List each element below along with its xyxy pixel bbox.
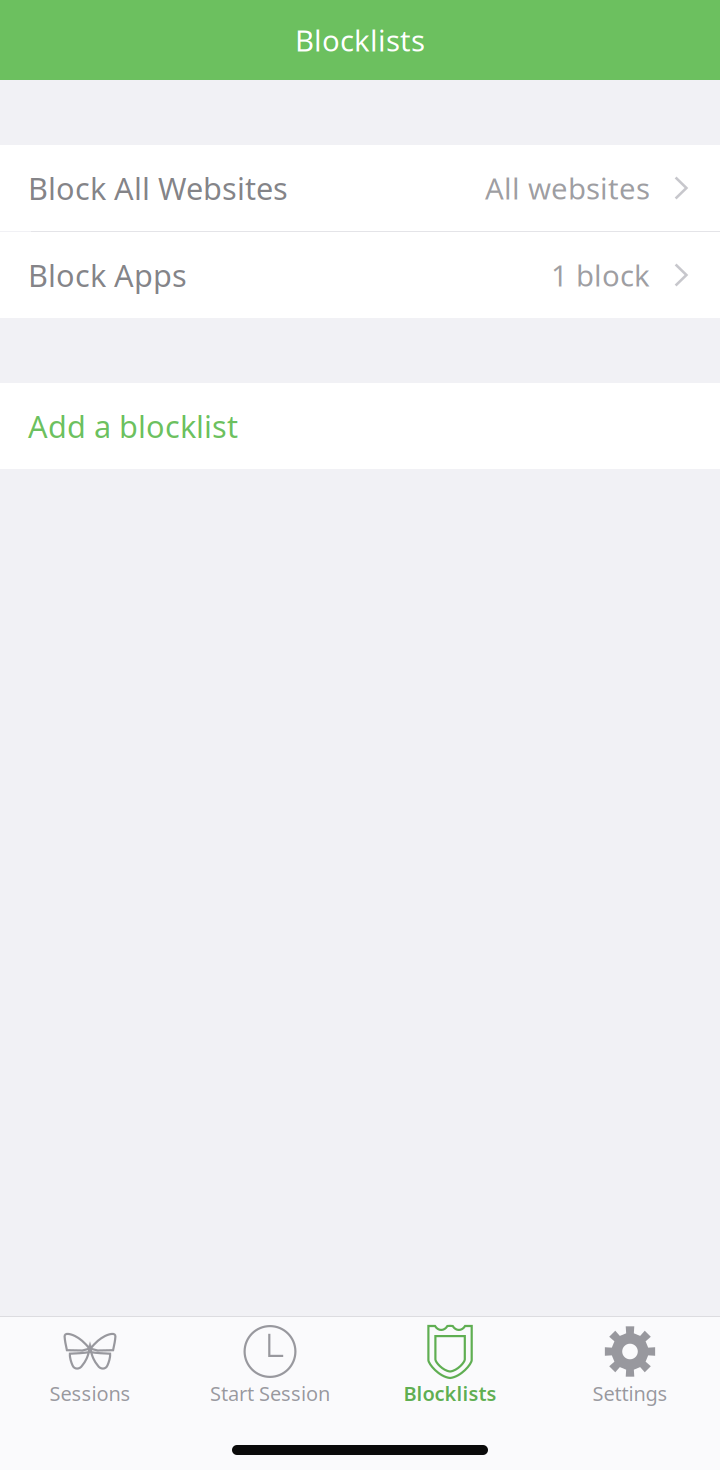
button[interactable]: Blocklists bbox=[360, 1317, 540, 1417]
button[interactable]: Sessions bbox=[0, 1317, 180, 1417]
button[interactable]: Start Session bbox=[180, 1317, 360, 1417]
staticText: Blocklists bbox=[295, 20, 425, 59]
staticText: Start Session bbox=[210, 1380, 330, 1407]
staticText: Add a blocklist bbox=[28, 406, 238, 446]
staticText: Settings bbox=[592, 1380, 667, 1407]
staticText: 1 block bbox=[551, 255, 650, 294]
button[interactable]: Settings bbox=[540, 1317, 720, 1417]
staticText: All websites bbox=[485, 168, 650, 207]
staticText: Sessions bbox=[49, 1380, 130, 1407]
staticText: Block All Websites bbox=[28, 168, 288, 208]
staticText: Block Apps bbox=[28, 255, 187, 295]
button[interactable]: Add a blocklist bbox=[0, 383, 720, 469]
staticText: Blocklists bbox=[403, 1380, 496, 1407]
button[interactable]: Block Apps bbox=[0, 232, 720, 318]
button[interactable]: Block All Websites bbox=[0, 145, 720, 231]
